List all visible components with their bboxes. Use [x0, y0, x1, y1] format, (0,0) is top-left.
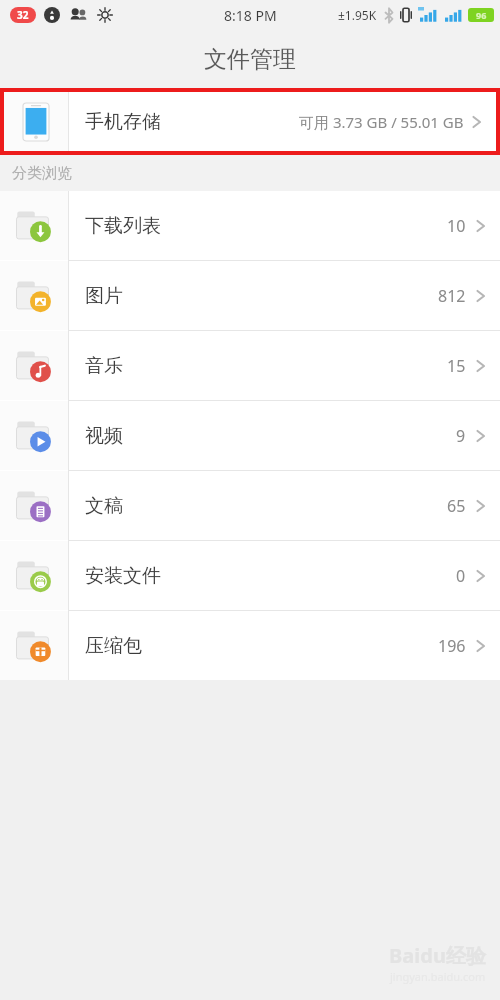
staticText: 196 [438, 635, 466, 657]
other: Open [476, 567, 486, 585]
button[interactable]: 视频 [0, 401, 500, 470]
staticText: 15 [447, 355, 466, 377]
staticText: 安装文件 [85, 564, 161, 588]
staticText: 65 [447, 495, 466, 517]
other: Open [476, 357, 486, 375]
button[interactable]: 安装文件 [0, 541, 500, 610]
other: Open [476, 427, 486, 445]
staticText: 压缩包 [85, 634, 142, 658]
staticText: 视频 [85, 424, 123, 448]
staticText: 8:18 PM [224, 6, 277, 25]
other: Open [476, 497, 486, 515]
staticText: 手机存储 [85, 110, 161, 134]
staticText: 812 [438, 285, 466, 307]
button[interactable]: 图片 [0, 261, 500, 330]
staticText: 下载列表 [85, 214, 161, 238]
staticText: 可用 3.73 GB / 55.01 GB [299, 112, 464, 132]
staticText: 文件管理 [204, 45, 296, 74]
staticText: 9 [456, 425, 466, 447]
other: Open [476, 637, 486, 655]
staticText: 96 [476, 9, 487, 21]
staticText: 图片 [85, 284, 123, 308]
other: Open [472, 113, 482, 131]
other: Open [476, 217, 486, 235]
staticText: 分类浏览 [12, 164, 72, 183]
staticText: 0 [456, 565, 466, 587]
button[interactable]: 音乐 [0, 331, 500, 400]
staticText: 文稿 [85, 494, 123, 518]
staticText: 音乐 [85, 354, 123, 378]
button[interactable]: 手机存储 [4, 92, 496, 151]
other: Open [476, 287, 486, 305]
staticText: Baidu经验 [389, 942, 486, 969]
button[interactable]: 下载列表 [0, 191, 500, 260]
button[interactable]: 文稿 [0, 471, 500, 540]
button[interactable]: 压缩包 [0, 611, 500, 680]
staticText: 10 [447, 215, 466, 237]
staticText: 32 [17, 8, 29, 22]
staticText: ±1.95K [338, 7, 377, 23]
